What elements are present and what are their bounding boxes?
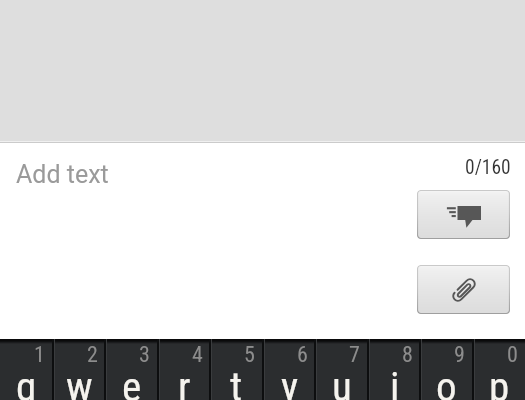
staticText: e bbox=[122, 363, 142, 400]
staticText: 1 bbox=[34, 342, 45, 368]
staticText: 6 bbox=[297, 342, 308, 368]
staticText: p bbox=[489, 363, 510, 400]
staticText: i bbox=[390, 363, 400, 400]
button[interactable]: Send message bbox=[417, 190, 510, 239]
staticText: o bbox=[436, 363, 457, 400]
staticText: 0/160 bbox=[465, 156, 511, 179]
staticText: 3 bbox=[139, 342, 150, 368]
staticText: w bbox=[66, 363, 93, 400]
button[interactable]: 5 bbox=[210, 339, 263, 400]
button[interactable]: 7 bbox=[315, 339, 368, 400]
button[interactable]: 6 bbox=[263, 339, 316, 400]
button[interactable]: 1 bbox=[0, 339, 53, 400]
staticText: u bbox=[332, 363, 352, 400]
staticText: q bbox=[16, 363, 37, 400]
staticText: Add text bbox=[16, 160, 109, 189]
staticText: y bbox=[281, 363, 299, 400]
staticText: 0 bbox=[507, 342, 518, 368]
staticText: 2 bbox=[87, 342, 98, 368]
staticText: 8 bbox=[402, 342, 413, 368]
staticText: t bbox=[230, 363, 243, 400]
button[interactable]: 3 bbox=[105, 339, 158, 400]
button[interactable]: 0 bbox=[473, 339, 525, 400]
button[interactable]: 4 bbox=[158, 339, 211, 400]
button[interactable]: 2 bbox=[53, 339, 106, 400]
button[interactable]: 9 bbox=[420, 339, 473, 400]
staticText: 5 bbox=[244, 342, 255, 368]
staticText: 7 bbox=[349, 342, 360, 368]
button[interactable]: 8 bbox=[368, 339, 421, 400]
button[interactable]: Add text bbox=[0, 144, 400, 204]
staticText: r bbox=[178, 363, 191, 400]
staticText: 4 bbox=[192, 342, 203, 368]
staticText: 9 bbox=[454, 342, 465, 368]
button[interactable]: Attach bbox=[417, 265, 510, 314]
